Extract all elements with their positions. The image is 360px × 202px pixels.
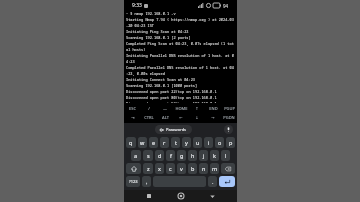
staticText: →	[211, 115, 215, 120]
staticText: n	[202, 165, 206, 172]
button[interactable]: ↑	[189, 104, 205, 113]
button[interactable]: END	[205, 104, 221, 113]
staticText: j	[203, 152, 205, 159]
staticText: s	[147, 152, 150, 159]
button[interactable]: →	[205, 113, 221, 122]
button[interactable]: t	[171, 137, 180, 148]
staticText: t	[175, 139, 177, 146]
staticText: Discovered open port 53/tcp on 192.168.0…	[126, 101, 217, 103]
button[interactable]: e	[149, 137, 158, 148]
button[interactable]: l	[221, 150, 230, 161]
staticText: ⇥	[131, 115, 135, 120]
staticText: r	[163, 139, 166, 146]
button[interactable]: v	[177, 163, 186, 174]
button[interactable]: Voice input	[224, 125, 233, 134]
button[interactable]: Back	[206, 190, 218, 202]
staticText: ESC	[129, 106, 136, 111]
button[interactable]: b	[188, 163, 197, 174]
staticText: Completed Ping Scan at 04:23, 0.07s elap…	[126, 41, 234, 46]
button[interactable]: —	[157, 104, 173, 113]
button[interactable]: d	[155, 150, 164, 161]
button[interactable]: s	[143, 150, 153, 161]
staticText: Initiating Parallel DNS resolution of 1 …	[126, 53, 234, 58]
button[interactable]: c	[166, 163, 175, 174]
staticText: Scanning 192.168.0.1 [2 ports]	[126, 35, 191, 40]
button[interactable]: ←	[173, 113, 189, 122]
button[interactable]: r	[160, 137, 169, 148]
staticText: 94	[223, 3, 229, 9]
button[interactable]: ,	[142, 176, 151, 187]
button[interactable]: h	[188, 150, 197, 161]
button[interactable]: i	[204, 137, 213, 148]
staticText: b	[191, 165, 195, 172]
button[interactable]: f	[166, 150, 175, 161]
staticText: END	[209, 106, 218, 111]
staticText: e	[152, 139, 156, 146]
staticText: ↓	[195, 115, 199, 120]
button[interactable]: y	[182, 137, 191, 148]
staticText: k	[213, 152, 216, 159]
button[interactable]: HOME	[173, 104, 189, 113]
staticText: Initiating Connect Scan at 04:23	[126, 77, 195, 82]
button[interactable]: j	[199, 150, 208, 161]
staticText: Passwords	[166, 127, 187, 132]
button[interactable]: k	[210, 150, 219, 161]
button[interactable]: u	[193, 137, 202, 148]
button[interactable]: ↓	[189, 113, 205, 122]
staticText: v	[180, 165, 183, 172]
staticText: Initiating Ping Scan at 04:23	[126, 29, 189, 34]
staticText: w	[140, 139, 145, 146]
button[interactable]: ~ $ nmap 192.168.0.1 -v	[124, 10, 237, 103]
staticText: ↑	[195, 106, 199, 111]
button[interactable]: w	[138, 137, 147, 148]
button[interactable]: Recents	[143, 190, 155, 202]
button[interactable]: /	[141, 104, 157, 113]
button[interactable]: x	[155, 163, 164, 174]
staticText: PGUP	[224, 106, 235, 111]
button[interactable]: Shift	[126, 163, 141, 174]
staticText: CTRL	[144, 115, 154, 120]
staticText: Scanning 192.168.0.1 [1000 ports]	[126, 83, 198, 88]
button[interactable]: o	[215, 137, 224, 148]
button[interactable]: .	[208, 176, 217, 187]
staticText: Discovered open port 22/tcp on 192.168.0…	[126, 89, 217, 94]
button[interactable]: Enter	[219, 176, 235, 187]
staticText: ~ $ nmap 192.168.0.1 -v	[126, 11, 176, 16]
button[interactable]: ?123	[126, 176, 140, 187]
button[interactable]: ⇥	[124, 113, 141, 122]
staticText: p	[229, 139, 233, 146]
button[interactable]: Backspace	[221, 163, 235, 174]
staticText: ALT	[162, 115, 169, 120]
staticText: -20 04:23 IST	[126, 23, 155, 28]
staticText: c	[169, 165, 172, 172]
button[interactable]: g	[177, 150, 186, 161]
button[interactable]: ESC	[124, 104, 141, 113]
staticText: 9:33	[132, 2, 142, 9]
staticText: ←	[179, 115, 183, 120]
button[interactable]: n	[199, 163, 208, 174]
button[interactable]: Home	[175, 190, 187, 202]
button[interactable]: a	[131, 150, 141, 161]
staticText: Starting Nmap 7.94 ( https://nmap.org ) …	[126, 17, 234, 22]
button[interactable]: p	[226, 137, 235, 148]
staticText: h	[191, 152, 195, 159]
button[interactable]: PGUP	[221, 104, 237, 113]
staticText: al hosts)	[126, 47, 146, 52]
button[interactable]: CTRL	[141, 113, 157, 122]
staticText: Discovered open port 80/tcp on 192.168.0…	[126, 95, 217, 100]
staticText: ?123	[129, 179, 138, 184]
button[interactable]: z	[143, 163, 153, 174]
button[interactable]: Passwords	[155, 125, 192, 134]
button[interactable]: m	[210, 163, 219, 174]
staticText: ,	[146, 178, 148, 185]
staticText: m	[212, 165, 218, 172]
button[interactable]: q	[126, 137, 136, 148]
staticText: z	[147, 165, 150, 172]
button[interactable]: PGDN	[221, 113, 237, 122]
button[interactable]: ALT	[157, 113, 173, 122]
staticText: i	[208, 139, 210, 146]
staticText: PGDN	[223, 115, 235, 120]
staticText: .	[212, 178, 214, 185]
staticText: —	[163, 106, 167, 111]
